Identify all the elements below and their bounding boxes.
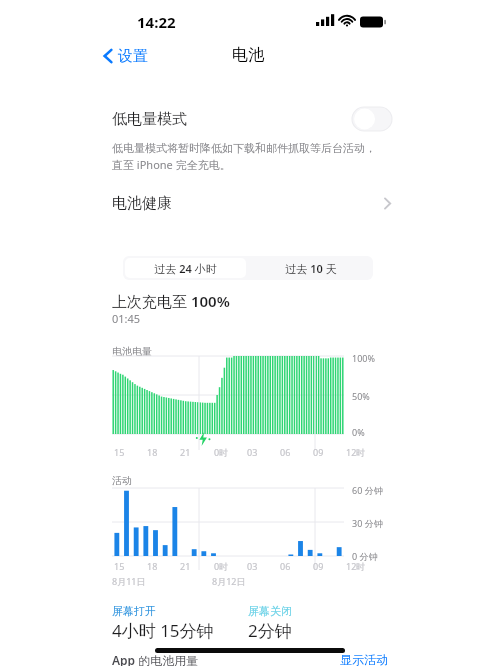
staticText: 15: [114, 560, 125, 572]
staticText: 上次充电至 100%: [112, 291, 230, 311]
staticText: 09: [313, 560, 324, 572]
staticText: 12时: [346, 560, 366, 572]
staticText: 06: [280, 560, 291, 572]
staticText: 4小时 15分钟: [112, 619, 214, 642]
staticText: 03: [247, 446, 258, 458]
button[interactable]: 设置: [98, 42, 152, 70]
staticText: 过去 10 天: [285, 261, 337, 276]
staticText: 18: [147, 446, 158, 458]
staticText: 过去 24 小时: [154, 261, 217, 276]
staticText: 电池: [232, 45, 264, 65]
staticText: 8月11日: [112, 575, 146, 587]
staticText: 8月12日: [212, 575, 246, 587]
button[interactable]: 电池健康: [112, 186, 392, 220]
button[interactable]: App 的电池用量: [112, 652, 199, 666]
button[interactable]: 过去 10 天: [248, 256, 373, 280]
staticText: 09: [313, 446, 324, 458]
staticText: 21: [180, 446, 191, 458]
staticText: 50%: [352, 390, 370, 402]
staticText: 06: [280, 446, 291, 458]
staticText: 12时: [346, 446, 366, 458]
staticText: 0%: [352, 426, 365, 438]
staticText: 0时: [214, 560, 229, 572]
staticText: 0 分钟: [352, 550, 378, 562]
staticText: 30 分钟: [352, 517, 383, 529]
staticText: 0时: [214, 446, 229, 458]
staticText: 03: [247, 560, 258, 572]
button[interactable]: 低电量模式: [112, 102, 392, 136]
staticText: 屏幕关闭: [248, 604, 292, 618]
staticText: 屏幕打开: [112, 604, 156, 618]
staticText: 14:22: [137, 12, 176, 32]
staticText: 低电量模式将暂时降低如下载和邮件抓取等后台活动， 直至 iPhone 完全充电。: [112, 141, 394, 172]
staticText: 设置: [118, 47, 148, 66]
button[interactable]: 显示活动: [340, 652, 388, 666]
staticText: 21: [180, 560, 191, 572]
staticText: 活动: [112, 474, 132, 487]
staticText: 18: [147, 560, 158, 572]
staticText: 01:45: [112, 311, 141, 326]
staticText: 100%: [352, 352, 375, 364]
staticText: 60 分钟: [352, 484, 383, 496]
staticText: 电池电量: [112, 345, 152, 358]
staticText: 15: [114, 446, 125, 458]
button[interactable]: 过去 24 小时: [125, 258, 246, 278]
staticText: 低电量模式: [112, 110, 187, 129]
staticText: 2分钟: [248, 619, 292, 642]
staticText: 电池健康: [112, 194, 172, 213]
